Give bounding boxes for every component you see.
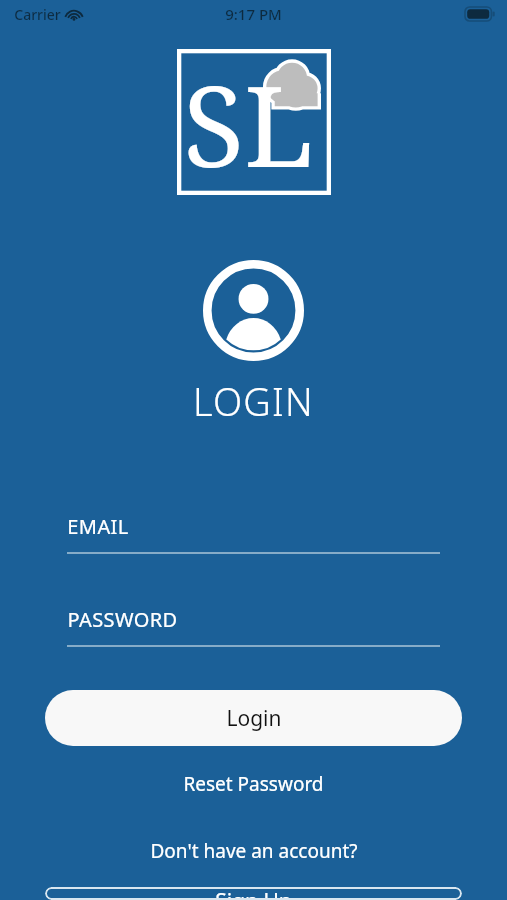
staticText: Carrier — [14, 5, 61, 24]
staticText: Sign Up — [215, 887, 292, 900]
staticText: SL — [183, 47, 314, 193]
staticText: Reset Password — [183, 771, 324, 797]
button[interactable]: Reset Password — [165, 767, 342, 801]
staticText: 9:17 PM — [225, 4, 282, 24]
staticText: Don't have an account? — [150, 838, 358, 864]
staticText: PASSWORD — [67, 606, 178, 633]
button[interactable]: Login — [45, 690, 462, 746]
staticText: LOGIN — [193, 375, 314, 427]
other: Account — [203, 260, 304, 361]
button[interactable]: EMAIL — [67, 513, 440, 554]
staticText: EMAIL — [67, 513, 129, 540]
button[interactable]: Sign Up — [45, 887, 462, 900]
button[interactable]: PASSWORD — [67, 606, 440, 647]
staticText: Login — [226, 704, 282, 733]
